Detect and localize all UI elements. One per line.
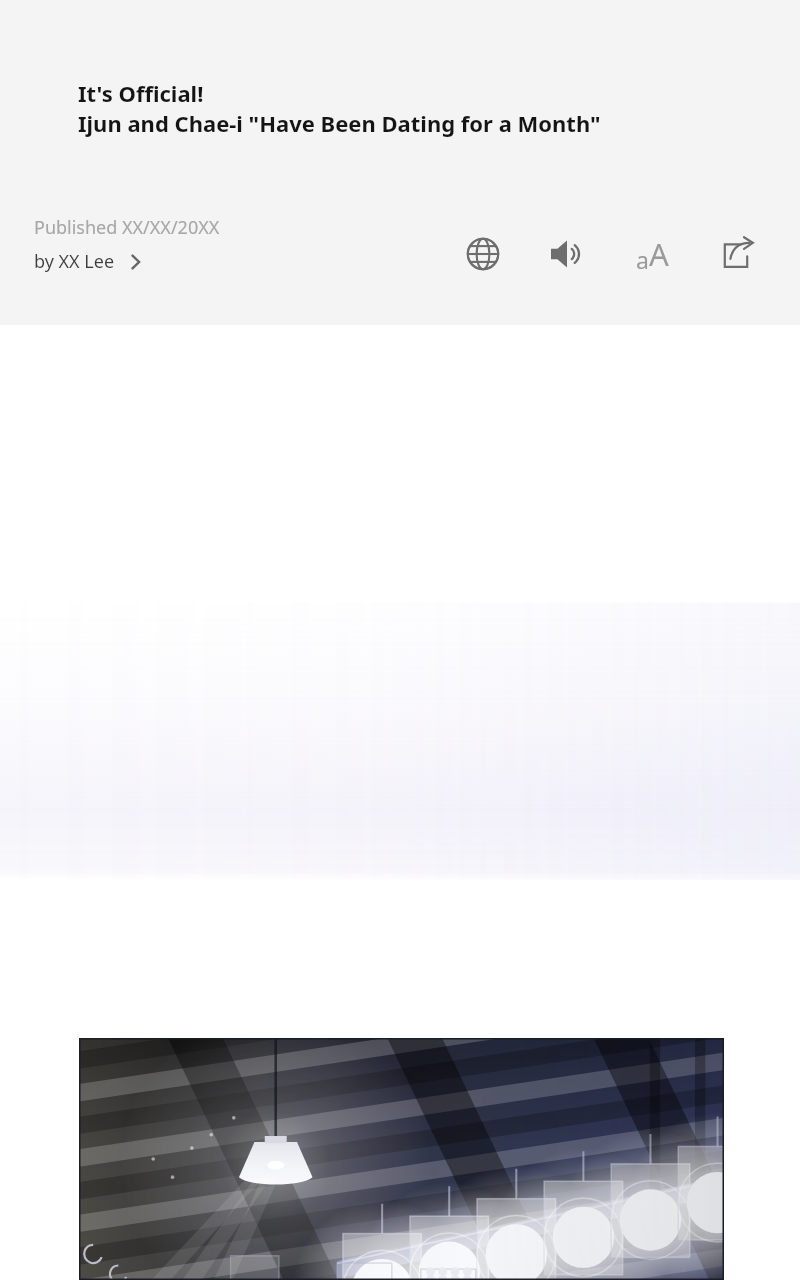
button[interactable]: Translate <box>455 226 511 282</box>
button[interactable]: Sound <box>539 226 595 282</box>
staticText: a <box>636 244 649 275</box>
staticText: It's Official! <box>78 78 204 108</box>
staticText: by XX Lee <box>34 249 115 274</box>
staticText: Ijun and Chae-i "Have Been Dating for a … <box>78 108 601 138</box>
button[interactable]: by XX Lee <box>34 249 149 274</box>
button[interactable]: Text size <box>624 226 680 282</box>
staticText: A <box>649 233 669 275</box>
staticText: Published XX/XX/20XX <box>34 215 220 240</box>
button[interactable]: Share <box>708 226 764 282</box>
